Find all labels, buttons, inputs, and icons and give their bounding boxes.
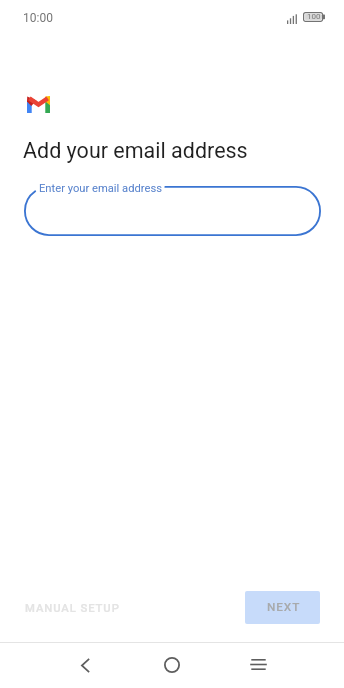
button[interactable]: Back bbox=[62, 642, 109, 688]
button[interactable]: Home bbox=[148, 642, 196, 688]
staticText: MANUAL SETUP bbox=[25, 602, 120, 615]
button[interactable]: NEXT bbox=[245, 591, 320, 624]
button[interactable]: Enter your email address bbox=[24, 186, 321, 236]
staticText: Enter your email address bbox=[39, 182, 162, 195]
staticText: Add your email address bbox=[23, 138, 248, 163]
button[interactable]: MANUAL SETUP bbox=[9, 591, 136, 624]
button[interactable]: Recent apps bbox=[234, 642, 282, 688]
other: Battery 100 percent bbox=[303, 12, 325, 22]
staticText: 100 bbox=[307, 12, 321, 21]
staticText: NEXT bbox=[267, 600, 301, 614]
other: Mobile signal bbox=[287, 14, 297, 24]
staticText: 10:00 bbox=[23, 11, 53, 25]
